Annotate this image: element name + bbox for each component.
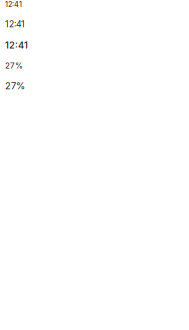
- staticText: 12:41: [5, 19, 25, 29]
- staticText: 27%: [5, 80, 25, 92]
- staticText: 12:41: [5, 0, 22, 9]
- staticText: 27%: [5, 61, 23, 70]
- staticText: 12:41: [5, 39, 28, 51]
